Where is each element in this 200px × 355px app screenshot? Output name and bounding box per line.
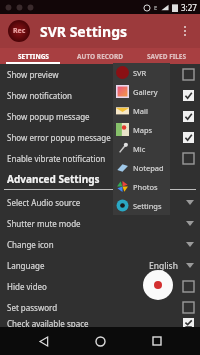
button[interactable]: Record [143, 270, 173, 300]
staticText: Settings [133, 201, 162, 211]
button[interactable]: Check available space [0, 318, 200, 327]
staticText: Mail [133, 106, 148, 116]
staticText: SVR [133, 68, 147, 78]
staticText: Check available space [7, 318, 89, 327]
staticText: Rec [13, 26, 26, 36]
button[interactable]: Back [31, 328, 57, 354]
staticText: Shutter mute mode [7, 218, 81, 229]
staticText: Notepad [133, 163, 164, 173]
staticText: AUTO RECORD [77, 52, 123, 61]
staticText: SVR Settings [40, 22, 128, 41]
staticText: Maps [133, 125, 153, 135]
button[interactable]: SVR [113, 63, 170, 82]
button[interactable]: Language [0, 255, 200, 276]
staticText: Photos [133, 182, 158, 192]
button[interactable]: More options [170, 16, 200, 46]
staticText: Mic [133, 144, 146, 154]
button[interactable]: Settings [113, 196, 170, 215]
button[interactable]: Photos [113, 177, 170, 196]
staticText: English [149, 260, 178, 272]
staticText: Gallery [133, 87, 158, 97]
button[interactable]: Notepad [113, 158, 170, 177]
staticText: Show popup message [7, 111, 90, 122]
staticText: Show notification [7, 90, 72, 101]
button[interactable]: Set password [0, 297, 200, 318]
button[interactable]: Hide video [0, 276, 200, 297]
staticText: SETTINGS [18, 52, 49, 61]
button[interactable]: SAVED FILES [133, 48, 200, 64]
button[interactable]: Select Audio source [0, 192, 200, 213]
staticText: Enable vibrate notification [7, 153, 106, 164]
button[interactable]: Change icon [0, 234, 200, 255]
button[interactable]: Mic [113, 139, 170, 158]
staticText: Advanced Settings [7, 172, 100, 186]
button[interactable]: Recents [144, 328, 170, 354]
staticText: E [154, 4, 158, 12]
button[interactable]: Home [87, 328, 113, 354]
button[interactable]: Mail [113, 101, 170, 120]
button[interactable]: Show popup message [0, 106, 200, 127]
staticText: Show preview [7, 69, 59, 80]
button[interactable]: AUTO RECORD [66, 48, 133, 64]
staticText: Set password [7, 302, 58, 313]
button[interactable]: Maps [113, 120, 170, 139]
staticText: 3:27 [181, 2, 197, 13]
staticText: Select Audio source [7, 197, 81, 208]
staticText: Language [7, 260, 45, 271]
staticText: SAVED FILES [147, 52, 187, 61]
button[interactable]: Show preview [0, 64, 200, 85]
staticText: Show error popup message [7, 132, 111, 143]
button[interactable]: Show notification [0, 85, 200, 106]
button[interactable]: SETTINGS [0, 48, 66, 64]
button[interactable]: Gallery [113, 82, 170, 101]
staticText: Change icon [7, 239, 54, 250]
button[interactable]: Enable vibrate notification [0, 148, 200, 169]
button[interactable]: Shutter mute mode [0, 213, 200, 234]
button[interactable]: Show error popup message [0, 127, 200, 148]
staticText: Hide video [7, 281, 47, 292]
